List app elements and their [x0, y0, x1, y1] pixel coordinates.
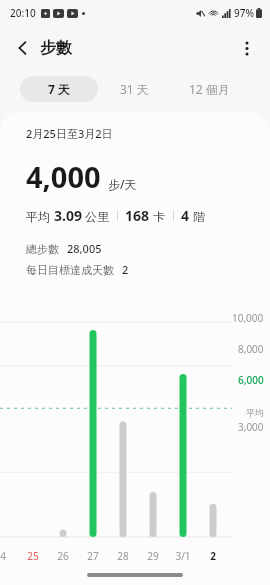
staticText: 6,000	[238, 373, 264, 387]
staticText: 2月25日至3月2日	[26, 126, 113, 141]
button[interactable]: 12 個月	[170, 76, 248, 102]
staticText: 12 個月	[189, 81, 230, 97]
staticText: 10,000	[232, 311, 264, 325]
staticText: 168	[125, 206, 150, 225]
staticText: 4	[181, 206, 190, 225]
staticText: 平均	[26, 208, 54, 224]
staticText: 2	[122, 262, 129, 277]
staticText: 28	[117, 549, 129, 563]
staticText: 步數	[40, 38, 72, 58]
button[interactable]: 31 天	[98, 76, 170, 102]
staticText: 29	[147, 549, 159, 563]
staticText: 2	[210, 549, 216, 563]
staticText: 27	[87, 549, 99, 563]
staticText: 8,000	[238, 342, 264, 356]
staticText: 28,005	[67, 241, 102, 256]
staticText: 平均	[246, 407, 264, 418]
staticText: 3/1	[175, 549, 191, 563]
staticText: 公里	[82, 208, 110, 224]
button[interactable]: Back	[6, 31, 40, 65]
staticText: 20:10	[10, 6, 36, 20]
button[interactable]: 7 天	[20, 76, 98, 102]
staticText: 4,000	[26, 157, 101, 196]
staticText: 7 天	[48, 81, 70, 97]
button[interactable]: More options	[230, 31, 264, 65]
staticText: 卡	[150, 208, 166, 224]
staticText: 3.09	[54, 206, 82, 225]
staticText: 3,000	[238, 420, 264, 434]
staticText: 31 天	[120, 81, 149, 97]
staticText: 4	[0, 549, 6, 563]
staticText: 25	[27, 549, 39, 563]
staticText: 每日目標達成天數	[26, 263, 114, 277]
staticText: 總步數	[26, 242, 59, 256]
staticText: 97%	[234, 6, 254, 20]
staticText: 步/天	[108, 176, 137, 192]
staticText: 階	[190, 208, 206, 224]
staticText: 26	[57, 549, 69, 563]
